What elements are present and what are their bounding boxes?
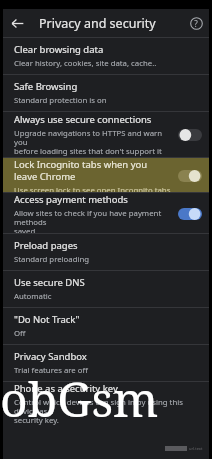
staticText: Standard preloading bbox=[14, 254, 90, 265]
button[interactable]: Access payment methods bbox=[3, 193, 209, 233]
staticText: Clear history, cookies, site data, cache… bbox=[14, 58, 157, 69]
button[interactable]: Always use secure connections bbox=[177, 127, 203, 142]
button[interactable]: Help bbox=[183, 10, 209, 36]
staticText: Allow sites to check if you have payment… bbox=[14, 208, 171, 233]
button[interactable]: Phone as a security key bbox=[3, 382, 209, 426]
button[interactable]: Always use secure connections bbox=[3, 112, 209, 157]
button[interactable]: Clear browsing data bbox=[3, 38, 209, 74]
staticText: Phone as a security key bbox=[14, 382, 118, 395]
button[interactable]: Lock Incognito tabs when you leave Chrom… bbox=[177, 168, 203, 183]
staticText: Lock Incognito tabs when you leave Chrom… bbox=[14, 158, 171, 183]
button[interactable]: "Do Not Track" bbox=[3, 308, 209, 344]
staticText: Use secure DNS bbox=[14, 276, 85, 289]
staticText: Trial features are off bbox=[14, 365, 88, 376]
staticText: Control which devices can sign in by usi… bbox=[14, 397, 203, 426]
staticText: Preload pages bbox=[14, 239, 78, 252]
staticText: Off bbox=[14, 328, 26, 339]
staticText: Standard protection is on bbox=[14, 95, 107, 106]
button[interactable]: Preload pages bbox=[3, 234, 209, 270]
staticText: Privacy Sandbox bbox=[14, 350, 87, 363]
staticText: Access payment methods bbox=[14, 193, 128, 206]
button[interactable]: Use secure DNS bbox=[3, 271, 209, 307]
staticText: Upgrade navigations to HTTPS and warn yo… bbox=[14, 128, 171, 157]
staticText: Use screen lock to see open Incognito ta… bbox=[14, 185, 171, 192]
staticText: Clear browsing data bbox=[14, 43, 104, 56]
button[interactable]: Privacy Sandbox bbox=[3, 345, 209, 381]
button[interactable]: Back bbox=[3, 9, 31, 37]
staticText: ? bbox=[194, 18, 198, 29]
staticText: obGsm bbox=[0, 366, 159, 431]
staticText: Always use secure connections bbox=[14, 113, 152, 126]
staticText: "Do Not Track" bbox=[14, 313, 80, 326]
staticText: Safe Browsing bbox=[14, 80, 78, 93]
staticText: url.text bbox=[189, 446, 203, 451]
button[interactable]: Safe Browsing bbox=[3, 75, 209, 111]
button[interactable]: Access payment methods bbox=[177, 206, 203, 221]
staticText: Privacy and security bbox=[39, 15, 183, 32]
button[interactable]: Lock Incognito tabs when you leave Chrom… bbox=[3, 158, 209, 192]
staticText: Automatic bbox=[14, 291, 52, 302]
